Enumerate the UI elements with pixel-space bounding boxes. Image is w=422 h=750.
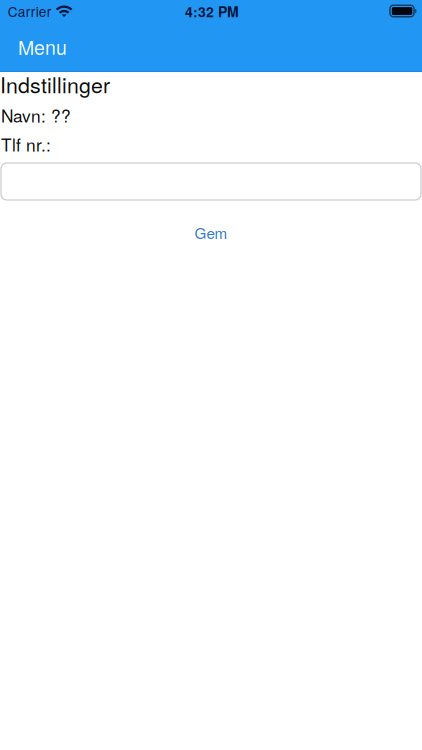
staticText: 4:32 PM <box>185 2 239 22</box>
staticText: Indstillinger <box>0 69 110 99</box>
staticText: Navn: ?? <box>1 103 71 127</box>
button[interactable]: Telefonnummer <box>1 163 421 200</box>
button[interactable]: Gem <box>0 222 422 242</box>
staticText: Carrier <box>8 1 52 21</box>
staticText: Menu <box>18 33 67 61</box>
staticText: Tlf nr.: <box>1 132 51 156</box>
staticText: Gem <box>194 221 227 243</box>
button[interactable]: Menu <box>0 26 84 68</box>
